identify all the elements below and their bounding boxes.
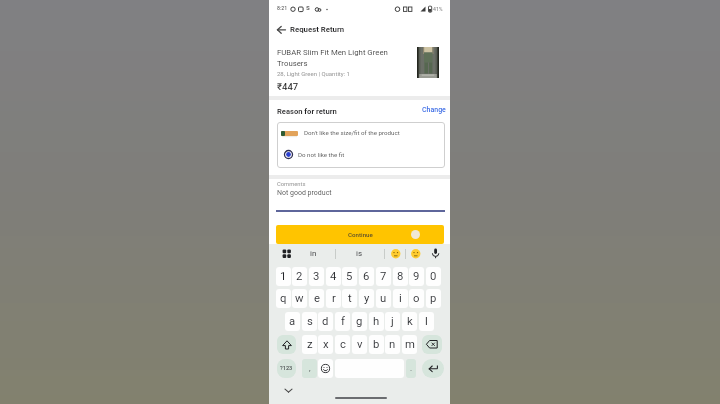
button[interactable]: 5 xyxy=(342,267,357,286)
staticText: is xyxy=(356,249,363,258)
button[interactable]: 2 xyxy=(292,267,307,286)
button[interactable] xyxy=(277,335,296,354)
staticText: 4 xyxy=(330,270,337,283)
button[interactable]: Comments xyxy=(276,179,445,212)
button[interactable]: r xyxy=(326,289,341,308)
staticText: l xyxy=(425,315,428,328)
button[interactable]: 0 xyxy=(426,267,441,286)
button[interactable]: 3 xyxy=(309,267,324,286)
staticText: e xyxy=(314,292,320,305)
button[interactable]: m xyxy=(402,335,417,354)
button[interactable]: x xyxy=(318,335,333,354)
button[interactable]: s xyxy=(302,312,317,331)
staticText: Don't like the size/fit of the product xyxy=(304,129,400,136)
button[interactable] xyxy=(276,25,286,35)
staticText: ₹447 xyxy=(277,81,299,92)
button[interactable] xyxy=(407,245,423,262)
button[interactable]: is xyxy=(336,244,382,263)
button[interactable] xyxy=(387,245,403,262)
staticText: ?123 xyxy=(280,365,293,372)
staticText: Reason for return xyxy=(277,107,337,116)
staticText: h xyxy=(373,315,380,328)
staticText: Request Return xyxy=(290,25,345,34)
button[interactable] xyxy=(422,335,442,354)
staticText: . xyxy=(410,364,413,373)
button[interactable]: c xyxy=(335,335,350,354)
staticText: t xyxy=(348,292,352,305)
button[interactable]: t xyxy=(342,289,357,308)
button[interactable]: o xyxy=(409,289,424,308)
staticText: Continue xyxy=(348,231,373,238)
button[interactable]: 9 xyxy=(409,267,424,286)
button[interactable]: . xyxy=(406,359,416,378)
staticText: o xyxy=(413,292,420,305)
staticText: r xyxy=(332,292,336,305)
button[interactable]: 4 xyxy=(326,267,341,286)
staticText: 28, Light Green | Quantity: 1 xyxy=(277,70,350,77)
button[interactable]: k xyxy=(402,312,417,331)
staticText: w xyxy=(295,292,304,305)
staticText: s xyxy=(307,315,313,328)
staticText: 8:21 xyxy=(277,5,288,11)
button[interactable]: 8 xyxy=(393,267,408,286)
button[interactable]: a xyxy=(285,312,300,331)
staticText: Not good product xyxy=(277,189,332,197)
button[interactable]: j xyxy=(385,312,400,331)
staticText: 0 xyxy=(430,270,437,283)
staticText: f xyxy=(341,315,345,328)
button[interactable]: i xyxy=(393,289,408,308)
button[interactable]: w xyxy=(292,289,307,308)
staticText: m xyxy=(405,338,415,351)
button[interactable]: e xyxy=(309,289,324,308)
staticText: 6 xyxy=(363,270,370,283)
staticText: 7 xyxy=(380,270,387,283)
button[interactable]: 6 xyxy=(359,267,374,286)
staticText: g xyxy=(356,315,363,328)
button[interactable]: y xyxy=(359,289,374,308)
staticText: , xyxy=(309,364,311,373)
button[interactable]: z xyxy=(302,335,317,354)
button[interactable] xyxy=(429,247,442,260)
button[interactable]: Do not like the fit xyxy=(277,145,445,167)
staticText: n xyxy=(389,338,396,351)
button[interactable]: n xyxy=(385,335,400,354)
staticText: b xyxy=(373,338,380,351)
staticText: k xyxy=(407,315,413,328)
button[interactable]: g xyxy=(352,312,367,331)
button[interactable]: , xyxy=(302,359,317,378)
button[interactable]: h xyxy=(369,312,384,331)
button[interactable] xyxy=(318,359,333,378)
button[interactable]: u xyxy=(376,289,391,308)
staticText: 41% xyxy=(433,6,443,12)
staticText: v xyxy=(357,338,363,351)
staticText: Trousers xyxy=(277,59,308,68)
staticText: 2 xyxy=(296,270,303,283)
staticText: 5 xyxy=(346,270,353,283)
button[interactable]: Don't like the size/fit of the product xyxy=(277,122,445,145)
staticText: x xyxy=(323,338,329,351)
button[interactable]: q xyxy=(276,289,291,308)
staticText: u xyxy=(380,292,387,305)
button[interactable]: f xyxy=(335,312,350,331)
staticText: FUBAR Slim Fit Men Light Green xyxy=(277,48,388,57)
staticText: Change xyxy=(422,106,446,114)
staticText: 1 xyxy=(280,270,287,283)
button[interactable]: d xyxy=(318,312,333,331)
button[interactable] xyxy=(422,359,444,378)
button[interactable]: 7 xyxy=(376,267,391,286)
staticText: 8 xyxy=(397,270,404,283)
staticText: d xyxy=(322,315,329,328)
button[interactable]: Change xyxy=(422,106,446,114)
button[interactable]: in xyxy=(297,244,330,263)
staticText: S xyxy=(306,4,310,11)
button[interactable] xyxy=(282,249,292,259)
staticText: j xyxy=(391,315,394,328)
button[interactable]: l xyxy=(419,312,434,331)
button[interactable]: v xyxy=(352,335,367,354)
button[interactable]: b xyxy=(369,335,384,354)
button[interactable]: ?123 xyxy=(277,359,296,378)
button[interactable]: p xyxy=(426,289,441,308)
button[interactable]: Continue xyxy=(276,225,444,244)
button[interactable]: 1 xyxy=(276,267,291,286)
